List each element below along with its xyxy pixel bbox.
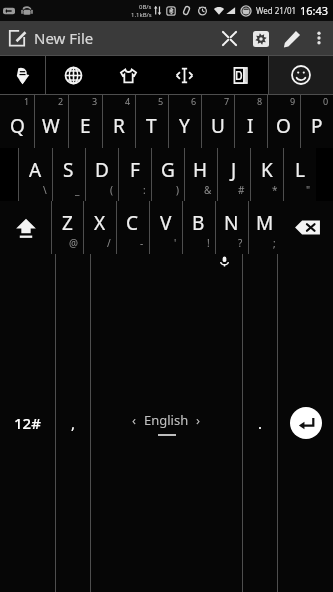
staticText: ;	[273, 236, 276, 250]
staticText: 1	[24, 95, 30, 107]
staticText: E	[80, 113, 91, 139]
button[interactable]: Enter	[278, 254, 333, 592]
button[interactable]	[51, 201, 83, 254]
staticText: Q	[10, 113, 25, 139]
button[interactable]	[151, 148, 184, 201]
button[interactable]	[18, 148, 52, 201]
button[interactable]: Clipboard	[212, 56, 268, 94]
button[interactable]: Keyboard theme	[101, 56, 156, 94]
staticText: K	[261, 157, 273, 183]
staticText: .	[258, 413, 263, 433]
button[interactable]	[102, 95, 135, 148]
button[interactable]: .	[243, 254, 277, 592]
staticText: F	[130, 157, 140, 183]
staticText: X	[94, 210, 106, 236]
button[interactable]: Move cursor	[156, 56, 212, 94]
staticText: -	[140, 236, 144, 250]
staticText: H	[193, 157, 208, 183]
button[interactable]	[184, 148, 217, 201]
button[interactable]: Edit	[276, 23, 307, 54]
button[interactable]: Rename file	[0, 21, 34, 55]
staticText: "	[306, 183, 311, 197]
button[interactable]	[68, 95, 102, 148]
button[interactable]: ,	[56, 254, 90, 592]
button[interactable]	[34, 95, 68, 148]
staticText: )	[176, 183, 179, 197]
button[interactable]	[215, 201, 248, 254]
staticText: (	[110, 183, 113, 197]
staticText: T	[146, 113, 157, 139]
staticText: W	[42, 113, 60, 139]
button[interactable]	[149, 201, 182, 254]
button[interactable]: Handwriting	[0, 56, 45, 94]
staticText: :	[143, 183, 146, 197]
staticText: 12#	[14, 413, 41, 433]
button[interactable]	[182, 201, 215, 254]
staticText: &	[204, 183, 212, 197]
staticText: ‹	[132, 411, 137, 429]
button[interactable]: Change language	[46, 56, 101, 94]
staticText: R	[113, 113, 125, 139]
staticText: 16:43	[300, 3, 329, 18]
button[interactable]	[267, 95, 300, 148]
button[interactable]	[0, 95, 34, 148]
button[interactable]: 12#	[0, 254, 55, 592]
staticText: 2	[58, 95, 64, 107]
staticText: I	[247, 113, 254, 139]
staticText: 9	[290, 95, 296, 107]
button[interactable]	[118, 148, 151, 201]
staticText: G	[161, 157, 175, 183]
staticText: #	[238, 183, 245, 197]
staticText: /	[107, 236, 111, 250]
staticText: *	[272, 183, 278, 197]
button[interactable]	[168, 95, 201, 148]
staticText: D	[95, 157, 109, 183]
button[interactable]	[248, 201, 281, 254]
staticText: 7	[224, 95, 230, 107]
staticText: Wed 21/01	[256, 5, 297, 16]
button[interactable]	[116, 201, 149, 254]
staticText: J	[231, 157, 237, 183]
staticText: 6	[191, 95, 197, 107]
staticText: !	[207, 236, 210, 250]
staticText: V	[160, 210, 172, 236]
staticText: C	[126, 210, 139, 236]
button[interactable]	[250, 148, 283, 201]
button[interactable]: Space, English	[91, 254, 242, 592]
staticText: 5	[158, 95, 164, 107]
button[interactable]	[52, 148, 85, 201]
staticText: 8	[257, 95, 263, 107]
button[interactable]	[283, 148, 316, 201]
staticText: Y	[179, 113, 190, 139]
button[interactable]	[234, 95, 267, 148]
staticText: 3	[92, 95, 98, 107]
staticText: _	[75, 183, 80, 197]
staticText: ,	[71, 413, 76, 433]
button[interactable]	[135, 95, 168, 148]
staticText: @	[69, 236, 78, 250]
button[interactable]: Fullscreen	[214, 23, 245, 54]
button[interactable]	[85, 148, 118, 201]
button[interactable]: More options	[307, 21, 331, 55]
button[interactable]	[83, 201, 116, 254]
button[interactable]: Emoji	[269, 56, 333, 94]
staticText: English	[144, 411, 189, 429]
button[interactable]: Settings	[245, 23, 276, 54]
button[interactable]: Backspace	[281, 201, 333, 254]
staticText: B	[192, 210, 205, 236]
button[interactable]	[300, 95, 333, 148]
staticText: U	[211, 113, 225, 139]
staticText: '	[174, 236, 177, 250]
staticText: 4	[125, 95, 131, 107]
staticText: Z	[62, 210, 73, 236]
button[interactable]: Shift	[0, 201, 51, 254]
staticText: P	[311, 113, 323, 139]
staticText: A	[29, 157, 42, 183]
staticText: S	[63, 157, 74, 183]
button[interactable]	[201, 95, 234, 148]
staticText: New File	[34, 28, 94, 48]
staticText: 1.1kB/s	[131, 11, 152, 19]
staticText: 0B/s	[139, 3, 152, 11]
staticText: N	[224, 210, 239, 236]
button[interactable]	[217, 148, 250, 201]
